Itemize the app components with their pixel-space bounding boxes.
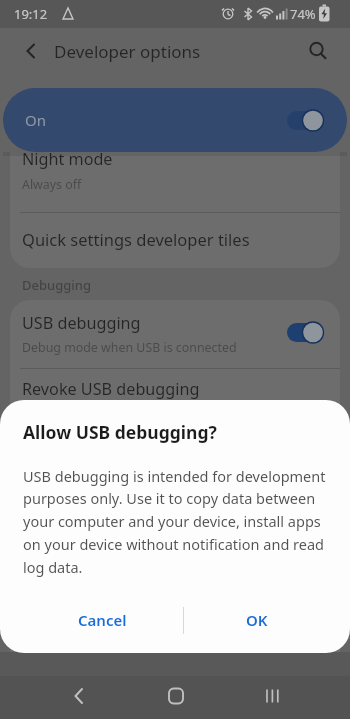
staticText: Quick settings developer tiles	[22, 228, 250, 250]
staticText: Always off	[22, 176, 82, 193]
button[interactable]	[12, 33, 50, 71]
staticText: Debugging	[22, 276, 92, 294]
button[interactable]: Cancel	[52, 606, 152, 634]
staticText: Developer options	[54, 40, 201, 63]
button[interactable]: OK	[217, 606, 297, 634]
button[interactable]	[298, 33, 336, 71]
button[interactable]	[10, 300, 340, 368]
staticText: Allow USB debugging?	[23, 420, 217, 444]
staticText: Revoke USB debugging	[22, 378, 200, 400]
staticText: OK	[246, 610, 268, 630]
button[interactable]	[3, 88, 347, 152]
staticText: 19:12	[14, 5, 48, 23]
button[interactable]	[135, 678, 215, 718]
button[interactable]	[286, 108, 328, 132]
button[interactable]	[286, 320, 328, 344]
button[interactable]	[40, 678, 120, 718]
button[interactable]	[10, 213, 340, 268]
button[interactable]	[10, 152, 340, 212]
staticText: 74%	[290, 5, 316, 23]
staticText: USB debugging is intended for developmen…	[23, 466, 326, 577]
staticText: USB debugging	[22, 312, 141, 334]
staticText: Night mode	[22, 148, 113, 170]
staticText: On	[25, 110, 46, 130]
staticText: Debug mode when USB is connected	[22, 339, 237, 356]
staticText: Cancel	[78, 610, 127, 630]
button[interactable]	[230, 678, 310, 718]
button[interactable]	[10, 369, 340, 400]
